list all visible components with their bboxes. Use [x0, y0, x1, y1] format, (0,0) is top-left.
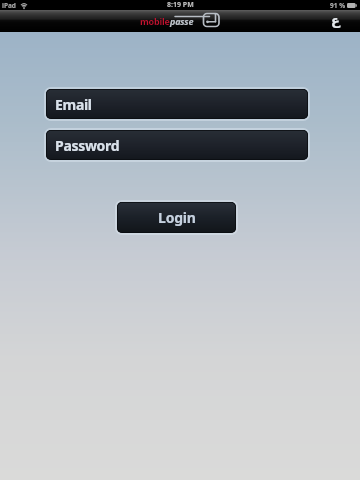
- staticText: 8:19 PM: [167, 0, 194, 10]
- staticText: ع: [331, 13, 340, 28]
- button[interactable]: Login: [117, 202, 236, 233]
- staticText: mobile: [140, 15, 170, 27]
- button[interactable]: ع: [322, 10, 348, 32]
- staticText: Email: [55, 95, 92, 114]
- button[interactable]: Email: [46, 89, 308, 119]
- staticText: 91 %: [330, 1, 345, 10]
- staticText: iPad: [2, 1, 16, 10]
- button[interactable]: Password: [46, 130, 308, 160]
- staticText: passe: [170, 15, 194, 27]
- staticText: Login: [158, 208, 196, 227]
- staticText: Password: [55, 136, 120, 155]
